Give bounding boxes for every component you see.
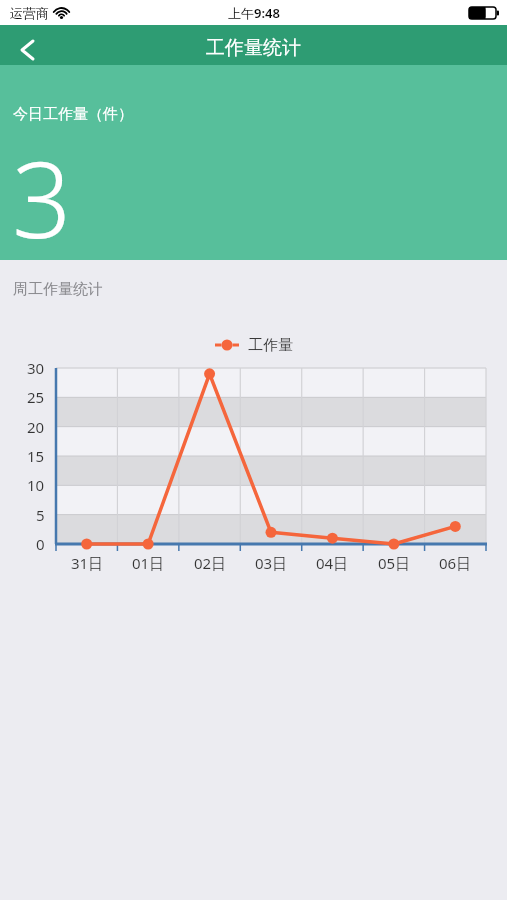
staticText: 25 [27,387,45,407]
staticText: 04日 [316,553,349,573]
staticText: 20 [27,417,45,437]
staticText: 15 [27,446,45,466]
staticText: 工作量 [248,336,293,354]
staticText: 05日 [378,553,411,573]
staticText: 上午9:48 [228,4,280,22]
staticText: 周工作量统计 [13,280,103,299]
staticText: 30 [27,358,45,378]
staticText: 今日工作量（件） [13,105,133,124]
staticText: 06日 [439,553,472,573]
button[interactable] [0,25,56,65]
staticText: 01日 [132,553,165,573]
staticText: 10 [27,475,45,495]
staticText: 03日 [255,553,288,573]
staticText: 工作量统计 [206,36,301,60]
staticText: 运营商 [10,5,49,21]
staticText: 31日 [71,553,104,573]
staticText: 3 [12,127,72,269]
staticText: 02日 [194,553,227,573]
staticText: 5 [36,505,45,525]
staticText: 0 [36,534,45,554]
